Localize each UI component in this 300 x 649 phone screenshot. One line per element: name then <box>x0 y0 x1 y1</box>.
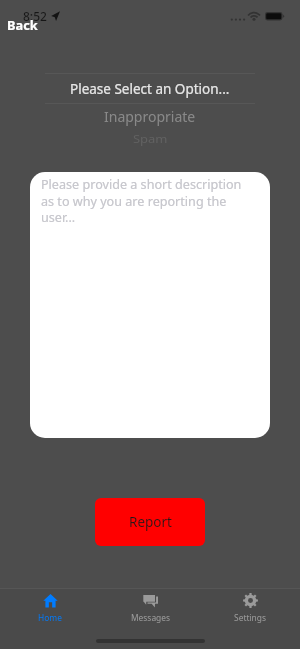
button[interactable]: Inappropriate <box>0 105 300 128</box>
staticText: Settings <box>234 612 266 623</box>
staticText: Please provide a short description as to… <box>41 176 257 226</box>
staticText: Home <box>38 612 62 623</box>
staticText: Spam <box>133 132 168 146</box>
button[interactable]: Please Select an Option... <box>0 73 300 104</box>
staticText: Messages <box>131 612 170 623</box>
staticText: Please Select an Option... <box>70 80 230 98</box>
button[interactable]: Messages <box>100 589 200 634</box>
button[interactable]: Back <box>6 15 39 34</box>
staticText: Inappropriate <box>104 107 196 126</box>
staticText: 8:52 <box>23 8 47 24</box>
staticText: Report <box>129 513 172 531</box>
button[interactable]: Home <box>0 589 100 634</box>
button[interactable]: Please provide a short description as to… <box>30 172 270 438</box>
staticText: Back <box>7 16 38 33</box>
button[interactable]: Report <box>95 498 205 546</box>
button[interactable]: Settings <box>200 589 300 634</box>
